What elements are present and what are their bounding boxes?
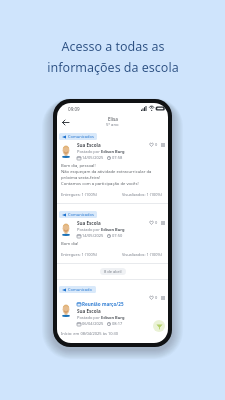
staticText: Postado por xyxy=(77,149,101,154)
button[interactable]: Filtrar xyxy=(153,320,165,332)
staticText: Entregues: 1 (100%) xyxy=(61,252,98,257)
staticText: Sua Escola xyxy=(77,220,101,226)
staticText: Bom dia! xyxy=(61,241,79,247)
staticText: Não esqueçam da atividade extracurricula… xyxy=(61,169,152,175)
staticText: Edison Burg xyxy=(101,149,125,154)
staticText: 8 de abril xyxy=(104,269,122,274)
staticText: Sua Escola xyxy=(77,142,101,148)
staticText: Reunião março/25 xyxy=(82,301,124,307)
staticText: 09:09 xyxy=(68,106,80,112)
button[interactable]: Voltar xyxy=(60,117,71,128)
staticText: Acesso a todas as xyxy=(61,38,165,55)
staticText: 0 xyxy=(155,295,158,300)
staticText: Entregues: 1 (100%) xyxy=(61,192,98,197)
staticText: Elisa xyxy=(108,116,118,122)
staticText: Visualizados: 1 (100%) xyxy=(122,192,162,197)
staticText: Postado por xyxy=(77,227,101,232)
staticText: 07:50 xyxy=(112,233,123,238)
staticText: Comunicados xyxy=(68,212,94,217)
button[interactable]: Comunicados xyxy=(57,130,168,203)
button[interactable]: Comunicado xyxy=(57,283,168,339)
staticText: Comunicados xyxy=(68,134,94,139)
staticText: 14/05/2025 xyxy=(82,155,104,160)
staticText: Edison Burg xyxy=(101,315,125,320)
staticText: 06/04/2025 xyxy=(82,321,104,326)
staticText: Sua Escola xyxy=(77,308,101,314)
staticText: Postado por xyxy=(77,315,101,320)
staticText: 0 xyxy=(155,142,158,147)
staticText: 08:17 xyxy=(112,321,123,326)
staticText: Comunicado xyxy=(68,287,93,292)
staticText: 0 xyxy=(155,220,158,225)
staticText: 07:58 xyxy=(112,155,123,160)
staticText: Edison Burg xyxy=(101,227,125,232)
staticText: informações da escola xyxy=(47,59,179,76)
staticText: 5º ano xyxy=(106,122,119,128)
staticText: 14/05/2025 xyxy=(82,233,104,238)
staticText: Contamos com a participação de vocês! xyxy=(61,181,139,187)
staticText: Início: em 08/04/2025 às 10:30 xyxy=(61,331,119,336)
staticText: próxima sexta-feira! xyxy=(61,175,101,181)
button[interactable]: Comunicados xyxy=(57,208,168,263)
staticText: Visualizados: 1 (100%) xyxy=(122,252,162,257)
staticText: Bom dia, pessoal! xyxy=(61,163,96,169)
